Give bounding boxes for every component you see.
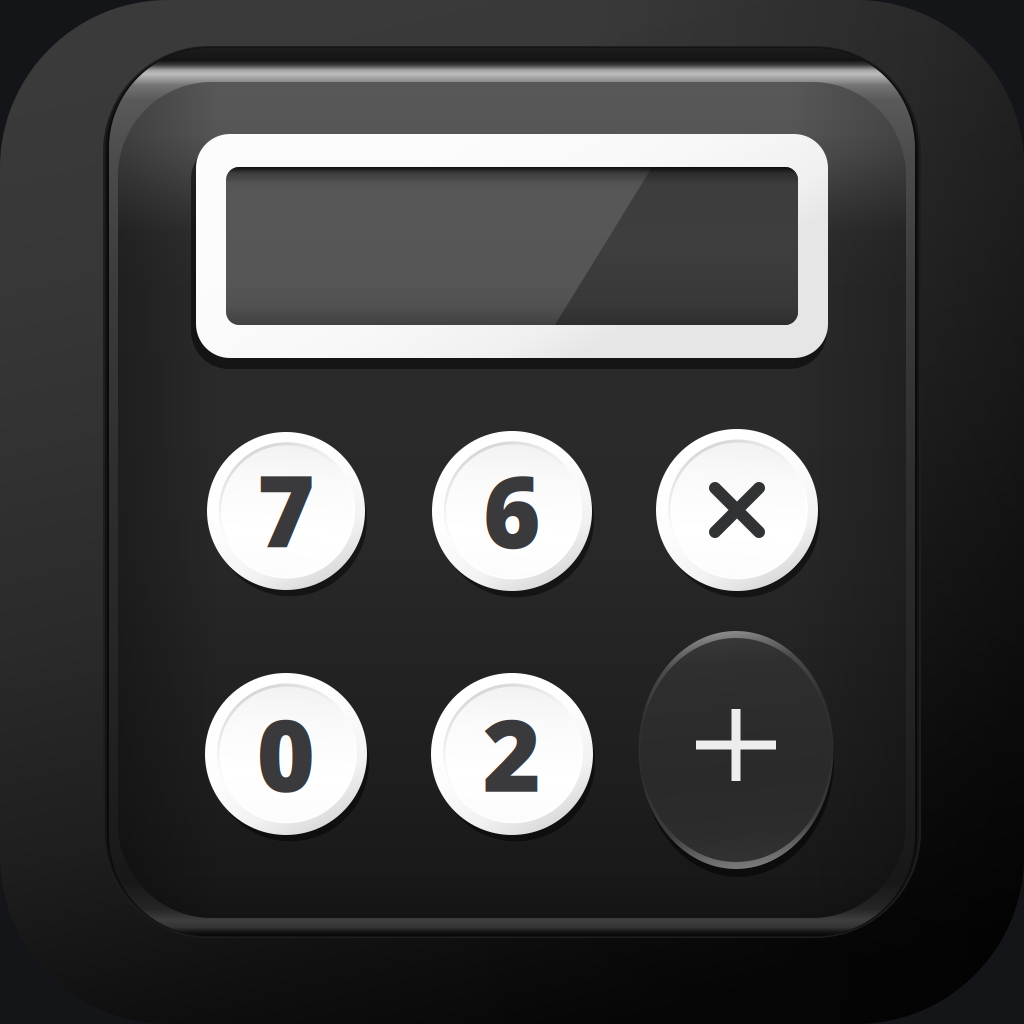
button[interactable]: 0 <box>205 673 367 835</box>
staticText: 7 <box>257 443 315 574</box>
button[interactable]: 6 <box>432 431 592 591</box>
button[interactable]: 2 <box>431 673 593 835</box>
staticText: 6 <box>483 444 541 575</box>
button[interactable] <box>656 429 818 591</box>
staticText: 0 <box>256 687 315 819</box>
staticText: 2 <box>482 687 541 819</box>
button[interactable]: Add <box>638 630 834 870</box>
button[interactable]: 7 <box>207 432 365 590</box>
